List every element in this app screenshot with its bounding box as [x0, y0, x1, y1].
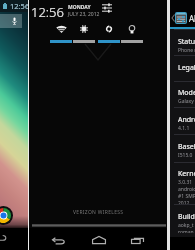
staticText: 3.0.31 — [178, 179, 193, 186]
staticText: VERIZON WIRELESS — [73, 209, 124, 216]
staticText: Model number — [178, 88, 195, 98]
button[interactable] — [98, 22, 120, 43]
button[interactable] — [73, 22, 95, 43]
staticText: #1 SMP — [178, 193, 195, 200]
staticText: Galaxy Nexus — [178, 98, 195, 105]
button[interactable]: Settings — [101, 2, 113, 14]
staticText: 4.1.1 — [178, 125, 190, 132]
button[interactable]: Recent apps — [131, 236, 144, 244]
button[interactable]: Baseband version — [170, 134, 195, 162]
staticText: Kernel version — [178, 169, 195, 179]
button[interactable] — [50, 22, 72, 43]
staticText: Legal information — [178, 63, 195, 73]
staticText: Android version — [178, 115, 195, 125]
button[interactable]: Home — [92, 236, 106, 244]
button[interactable]: Kernel version — [170, 162, 195, 204]
button[interactable]: Back — [52, 237, 65, 244]
staticText: roman — [178, 229, 194, 233]
staticText: Status — [178, 37, 195, 47]
staticText: Build number — [178, 212, 195, 222]
button[interactable]: Settings — [176, 13, 186, 23]
button[interactable]: Build number — [170, 204, 195, 233]
staticText: android — [178, 186, 195, 193]
staticText: 2012 — [178, 200, 190, 204]
staticText: 12:56 — [10, 1, 28, 11]
button[interactable]: Search — [0, 14, 22, 28]
staticText: Baseband version — [178, 142, 195, 152]
staticText: aokp_t — [178, 222, 194, 229]
button[interactable]: Status — [170, 29, 195, 55]
staticText: Ab — [189, 13, 195, 24]
button[interactable]: Legal information — [170, 55, 195, 81]
button[interactable]: Android version — [170, 107, 195, 134]
button[interactable]: Chrome — [0, 206, 13, 225]
staticText: 12:56 — [31, 3, 64, 21]
staticText: MONDAY — [68, 4, 91, 11]
button[interactable]: Model number — [170, 81, 195, 107]
button[interactable] — [121, 22, 143, 43]
staticText: I515.0 — [178, 152, 193, 159]
staticText: JULY 23, 2012 — [68, 11, 100, 18]
staticText: Phone number — [178, 47, 195, 54]
